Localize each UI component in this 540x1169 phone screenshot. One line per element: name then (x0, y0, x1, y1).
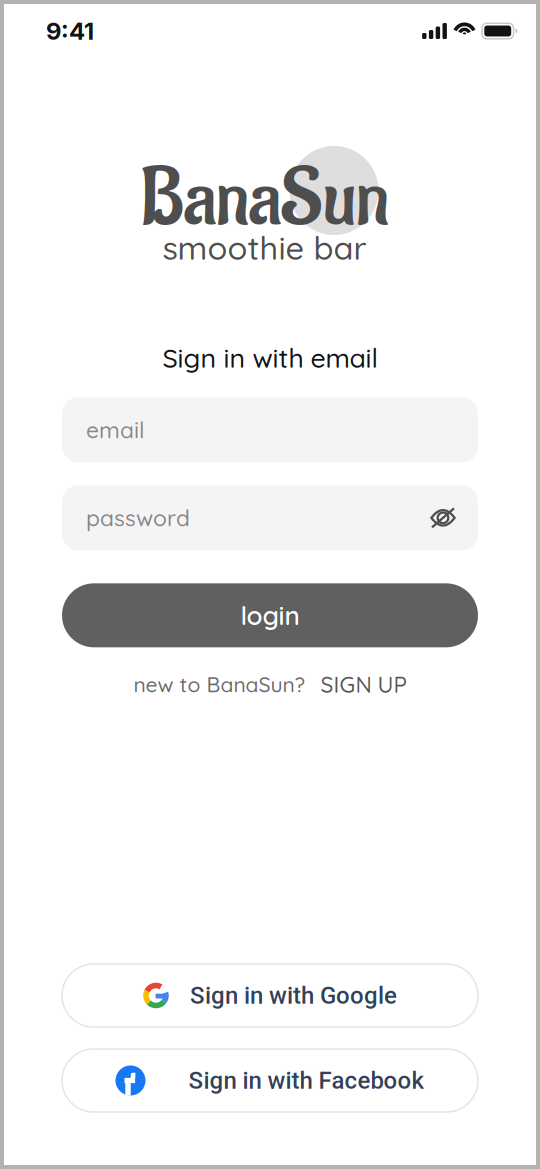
staticText: Sign in with Facebook (188, 1066, 424, 1094)
staticText: email (86, 416, 145, 444)
staticText: smoothie bar (162, 227, 366, 268)
staticText: new to BanaSun? (133, 671, 305, 697)
button[interactable]: SIGN UP (320, 670, 406, 698)
button[interactable]: login (62, 583, 478, 647)
button[interactable]: Show password (430, 506, 456, 530)
staticText: login (240, 599, 299, 632)
staticText: password (86, 504, 190, 532)
button[interactable]: Sign in with Google (62, 964, 478, 1027)
staticText: 9:41 (46, 16, 94, 45)
staticText: BanaSun (140, 149, 388, 250)
staticText: SIGN UP (320, 670, 406, 698)
staticText: Sign in with Google (190, 981, 397, 1009)
staticText: Sign in with email (162, 341, 377, 374)
button[interactable]: Sign in with Facebook (62, 1049, 478, 1112)
